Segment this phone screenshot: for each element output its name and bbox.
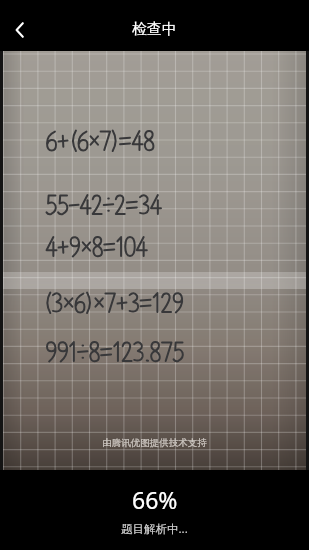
staticText: 由腾讯优图提供技术支持 [102, 437, 207, 449]
button[interactable]: Back [0, 10, 40, 50]
staticText: 检查中 [132, 20, 177, 39]
staticText: 题目解析中... [121, 521, 188, 537]
staticText: 66% [132, 484, 178, 515]
